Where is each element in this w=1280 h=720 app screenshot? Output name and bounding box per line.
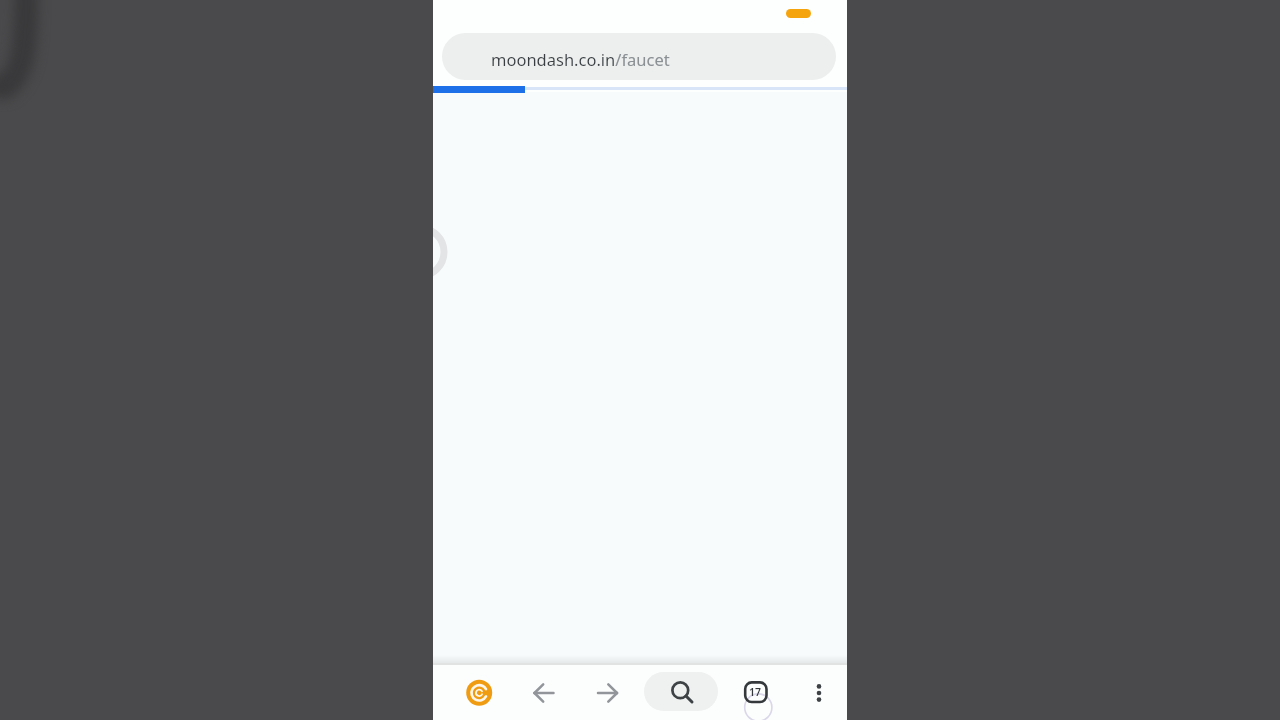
button[interactable]	[466, 680, 492, 706]
staticText: moondash.co.in/faucet	[491, 48, 670, 70]
button[interactable]	[531, 680, 557, 706]
button[interactable]	[806, 680, 832, 706]
button[interactable]	[594, 680, 620, 706]
button[interactable]	[742, 680, 768, 706]
staticText: 17	[749, 685, 762, 699]
button[interactable]: moondash.co.in/faucet	[442, 33, 836, 80]
button[interactable]	[644, 672, 718, 711]
button[interactable]: 17	[745, 682, 766, 702]
